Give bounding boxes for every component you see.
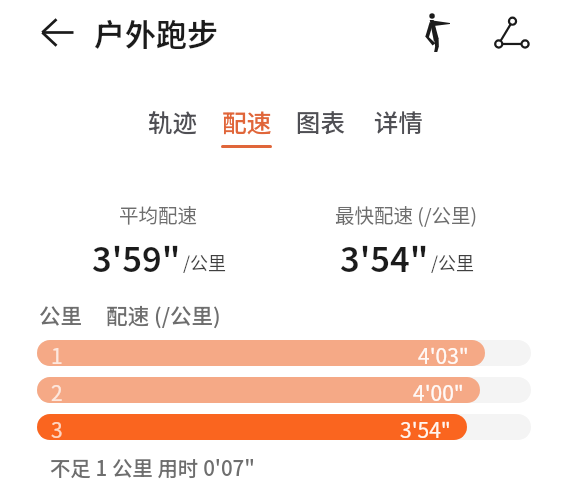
staticText: 不足 1 公里 用时 0'07"	[50, 452, 255, 482]
button[interactable]: Share	[487, 7, 537, 57]
staticText: 公里 配速 (/公里)	[39, 299, 221, 330]
button[interactable]	[37, 340, 531, 366]
staticText: 3'59"	[92, 233, 181, 282]
staticText: 2	[51, 377, 63, 403]
staticText: 户外跑步	[94, 10, 218, 55]
staticText: /公里	[183, 249, 227, 275]
staticText: 3'54"	[400, 414, 451, 440]
staticText: 详情	[374, 104, 423, 139]
button[interactable]: Running mode	[412, 8, 462, 58]
button[interactable]: 图表	[286, 104, 354, 154]
staticText: 最快配速 (/公里)	[335, 200, 478, 228]
button[interactable]: 详情	[364, 104, 432, 154]
button[interactable]	[37, 377, 531, 403]
button[interactable]: Back	[33, 8, 81, 56]
staticText: 平均配速	[119, 200, 198, 228]
staticText: 4'00"	[413, 377, 464, 403]
button[interactable]: 配速	[212, 104, 280, 154]
staticText: 图表	[296, 104, 345, 139]
staticText: 1	[51, 340, 63, 366]
staticText: 配速	[222, 104, 271, 139]
staticText: 4'03"	[418, 340, 469, 366]
staticText: /公里	[431, 249, 475, 275]
button[interactable]: 轨迹	[138, 104, 206, 154]
staticText: 轨迹	[148, 104, 197, 139]
button[interactable]	[37, 414, 531, 440]
staticText: 3'54"	[340, 233, 429, 282]
staticText: 3	[51, 414, 63, 440]
